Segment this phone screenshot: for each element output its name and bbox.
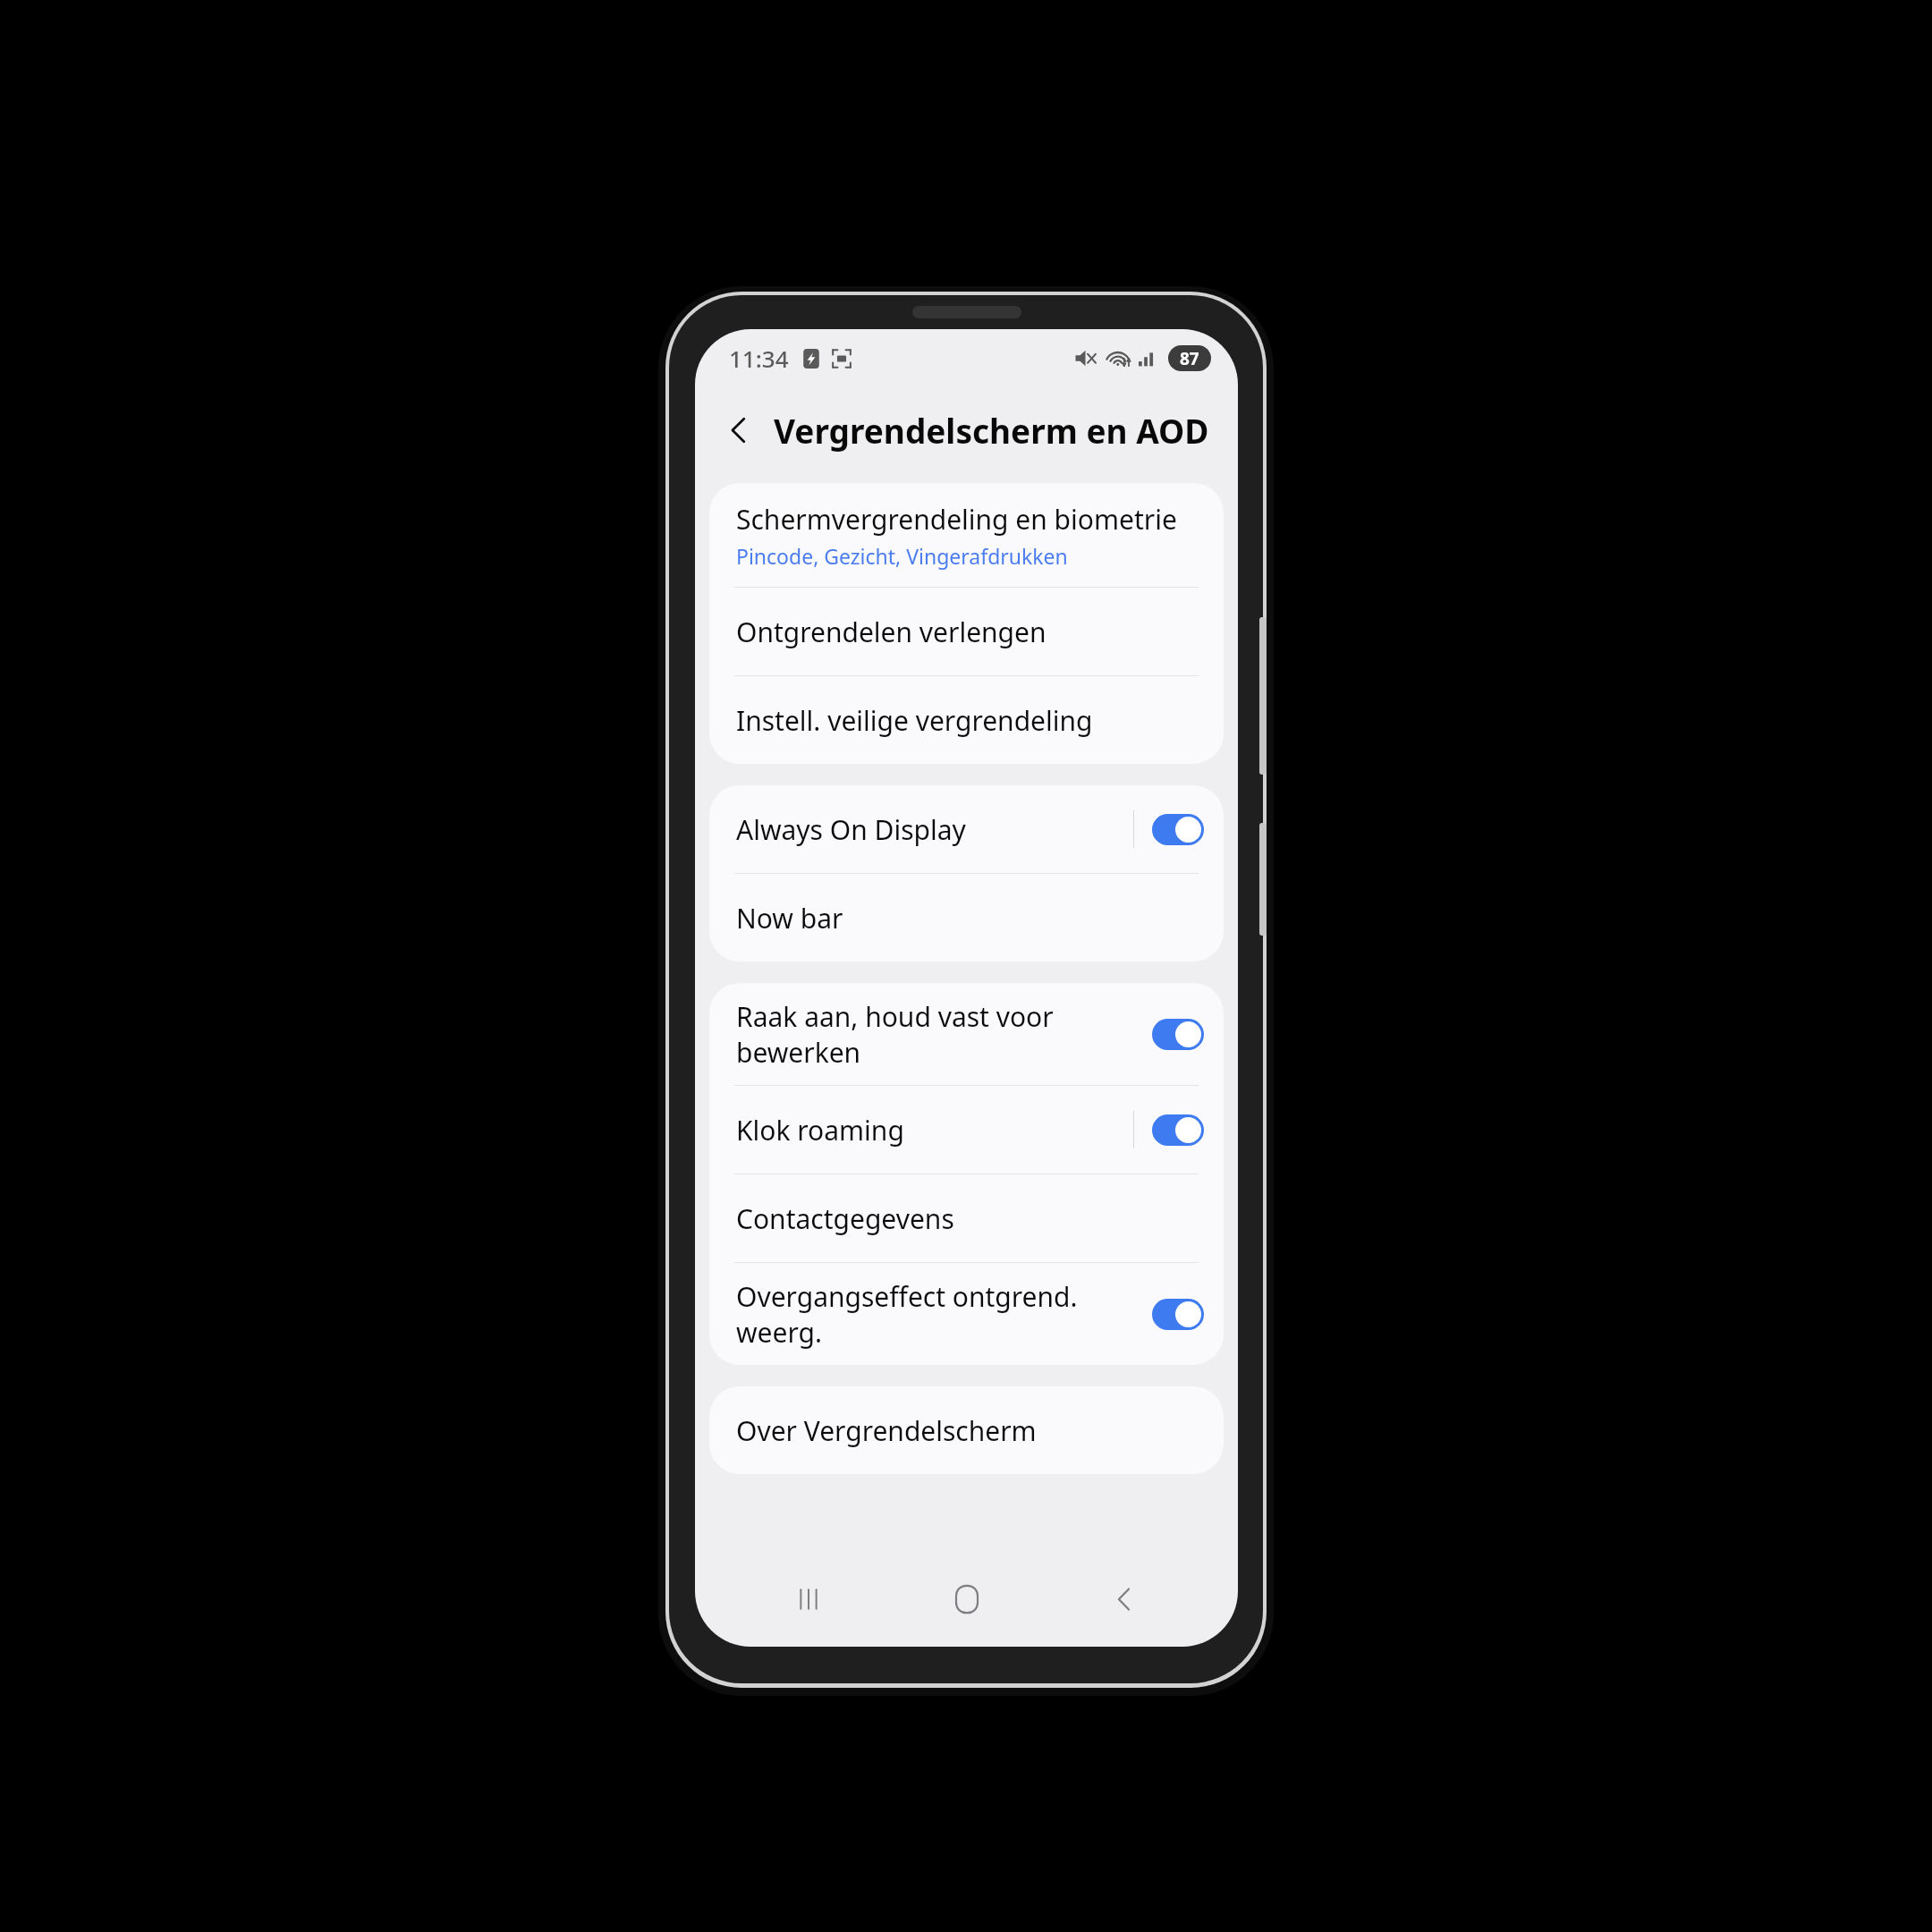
staticText: Over Vergrendelscherm (736, 1412, 1037, 1449)
button[interactable]: Overgangseffect ontgrend. weerg. (709, 1263, 1224, 1365)
staticText: Now bar (736, 900, 843, 936)
staticText: Always On Display (736, 811, 966, 848)
button[interactable]: Contactgegevens (709, 1174, 1224, 1262)
button[interactable]: Raak aan, houd vast voor bewerken (709, 983, 1224, 1085)
button[interactable]: Ontgrendelen verlengen (709, 588, 1224, 675)
button[interactable]: Over Vergrendelscherm (709, 1386, 1224, 1474)
button[interactable]: Overgangseffect ontgrend. weerg. schakel… (1152, 1299, 1204, 1330)
button[interactable]: Always On Display (709, 785, 1224, 873)
staticText: Contactgegevens (736, 1200, 954, 1237)
button[interactable]: Recente apps (764, 1566, 853, 1632)
button[interactable]: Now bar (709, 874, 1224, 962)
button[interactable]: Instell. veilige vergrendeling (709, 676, 1224, 764)
staticText: Ontgrendelen verlengen (736, 614, 1046, 650)
button[interactable]: Terug (1080, 1566, 1169, 1632)
staticText: Overgangseffect ontgrend. weerg. (736, 1278, 1138, 1351)
button[interactable]: Always On Display schakelaar (1152, 814, 1204, 845)
button[interactable]: Klok roaming schakelaar (1152, 1114, 1204, 1146)
staticText: Instell. veilige vergrendeling (736, 702, 1093, 739)
staticText: Pincode, Gezicht, Vingerafdrukken (736, 542, 1068, 570)
button[interactable]: Klok roaming (709, 1086, 1224, 1174)
staticText: Klok roaming (736, 1112, 904, 1148)
button[interactable]: Schermvergrendeling en biometrie (709, 483, 1224, 587)
staticText: Vergrendelscherm en AOD (774, 408, 1209, 453)
button[interactable]: Raak aan, houd vast voor bewerken schake… (1152, 1019, 1204, 1050)
button[interactable]: Terug (713, 404, 765, 456)
staticText: Schermvergrendeling en biometrie (736, 501, 1177, 538)
staticText: Raak aan, houd vast voor bewerken (736, 998, 1138, 1071)
staticText: 87 (1180, 347, 1199, 370)
staticText: 11:34 (729, 343, 789, 374)
button[interactable]: Start (922, 1566, 1012, 1632)
